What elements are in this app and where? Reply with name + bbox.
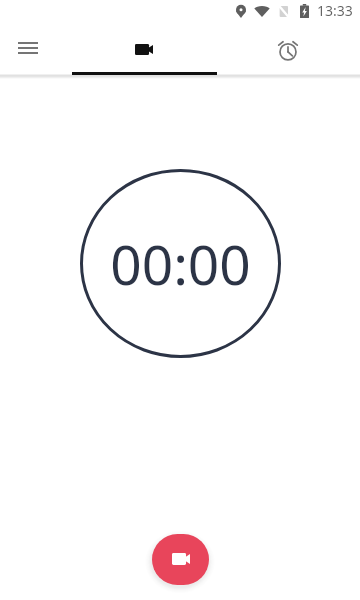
staticText: 00:00	[110, 226, 251, 301]
button[interactable]: Start recording	[152, 534, 209, 585]
button[interactable]: Open navigation menu	[4, 24, 52, 72]
staticText: 13:33	[317, 1, 353, 20]
button[interactable]: Alarm tab	[216, 24, 360, 74]
button[interactable]: Video recorder tab	[72, 24, 216, 74]
